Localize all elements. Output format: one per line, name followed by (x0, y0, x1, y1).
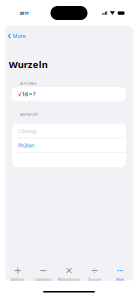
staticText: 20:11 (19, 10, 28, 16)
button[interactable]: More (5, 31, 29, 41)
staticText: Division (88, 277, 101, 282)
button[interactable]: Multiplikation (56, 259, 82, 279)
button[interactable]: Prüfen (12, 138, 126, 152)
staticText: More (116, 277, 124, 282)
staticText: Prüfen (18, 141, 34, 149)
staticText: ANTWORT (20, 112, 38, 117)
staticText: More (13, 33, 26, 39)
button[interactable]: Division (82, 259, 107, 279)
staticText: Wurzeln (9, 58, 48, 71)
staticText: √16 = ? (18, 90, 35, 98)
button[interactable]: Addition (5, 259, 31, 279)
staticText: Multiplikation (58, 277, 80, 282)
staticText: Lösung (18, 127, 36, 134)
staticText: AUFGABE (20, 81, 37, 86)
staticText: Subtraktion (34, 277, 52, 282)
button[interactable]: More (107, 259, 133, 279)
staticText: Addition (11, 277, 24, 282)
button[interactable]: Subtraktion (31, 259, 56, 279)
